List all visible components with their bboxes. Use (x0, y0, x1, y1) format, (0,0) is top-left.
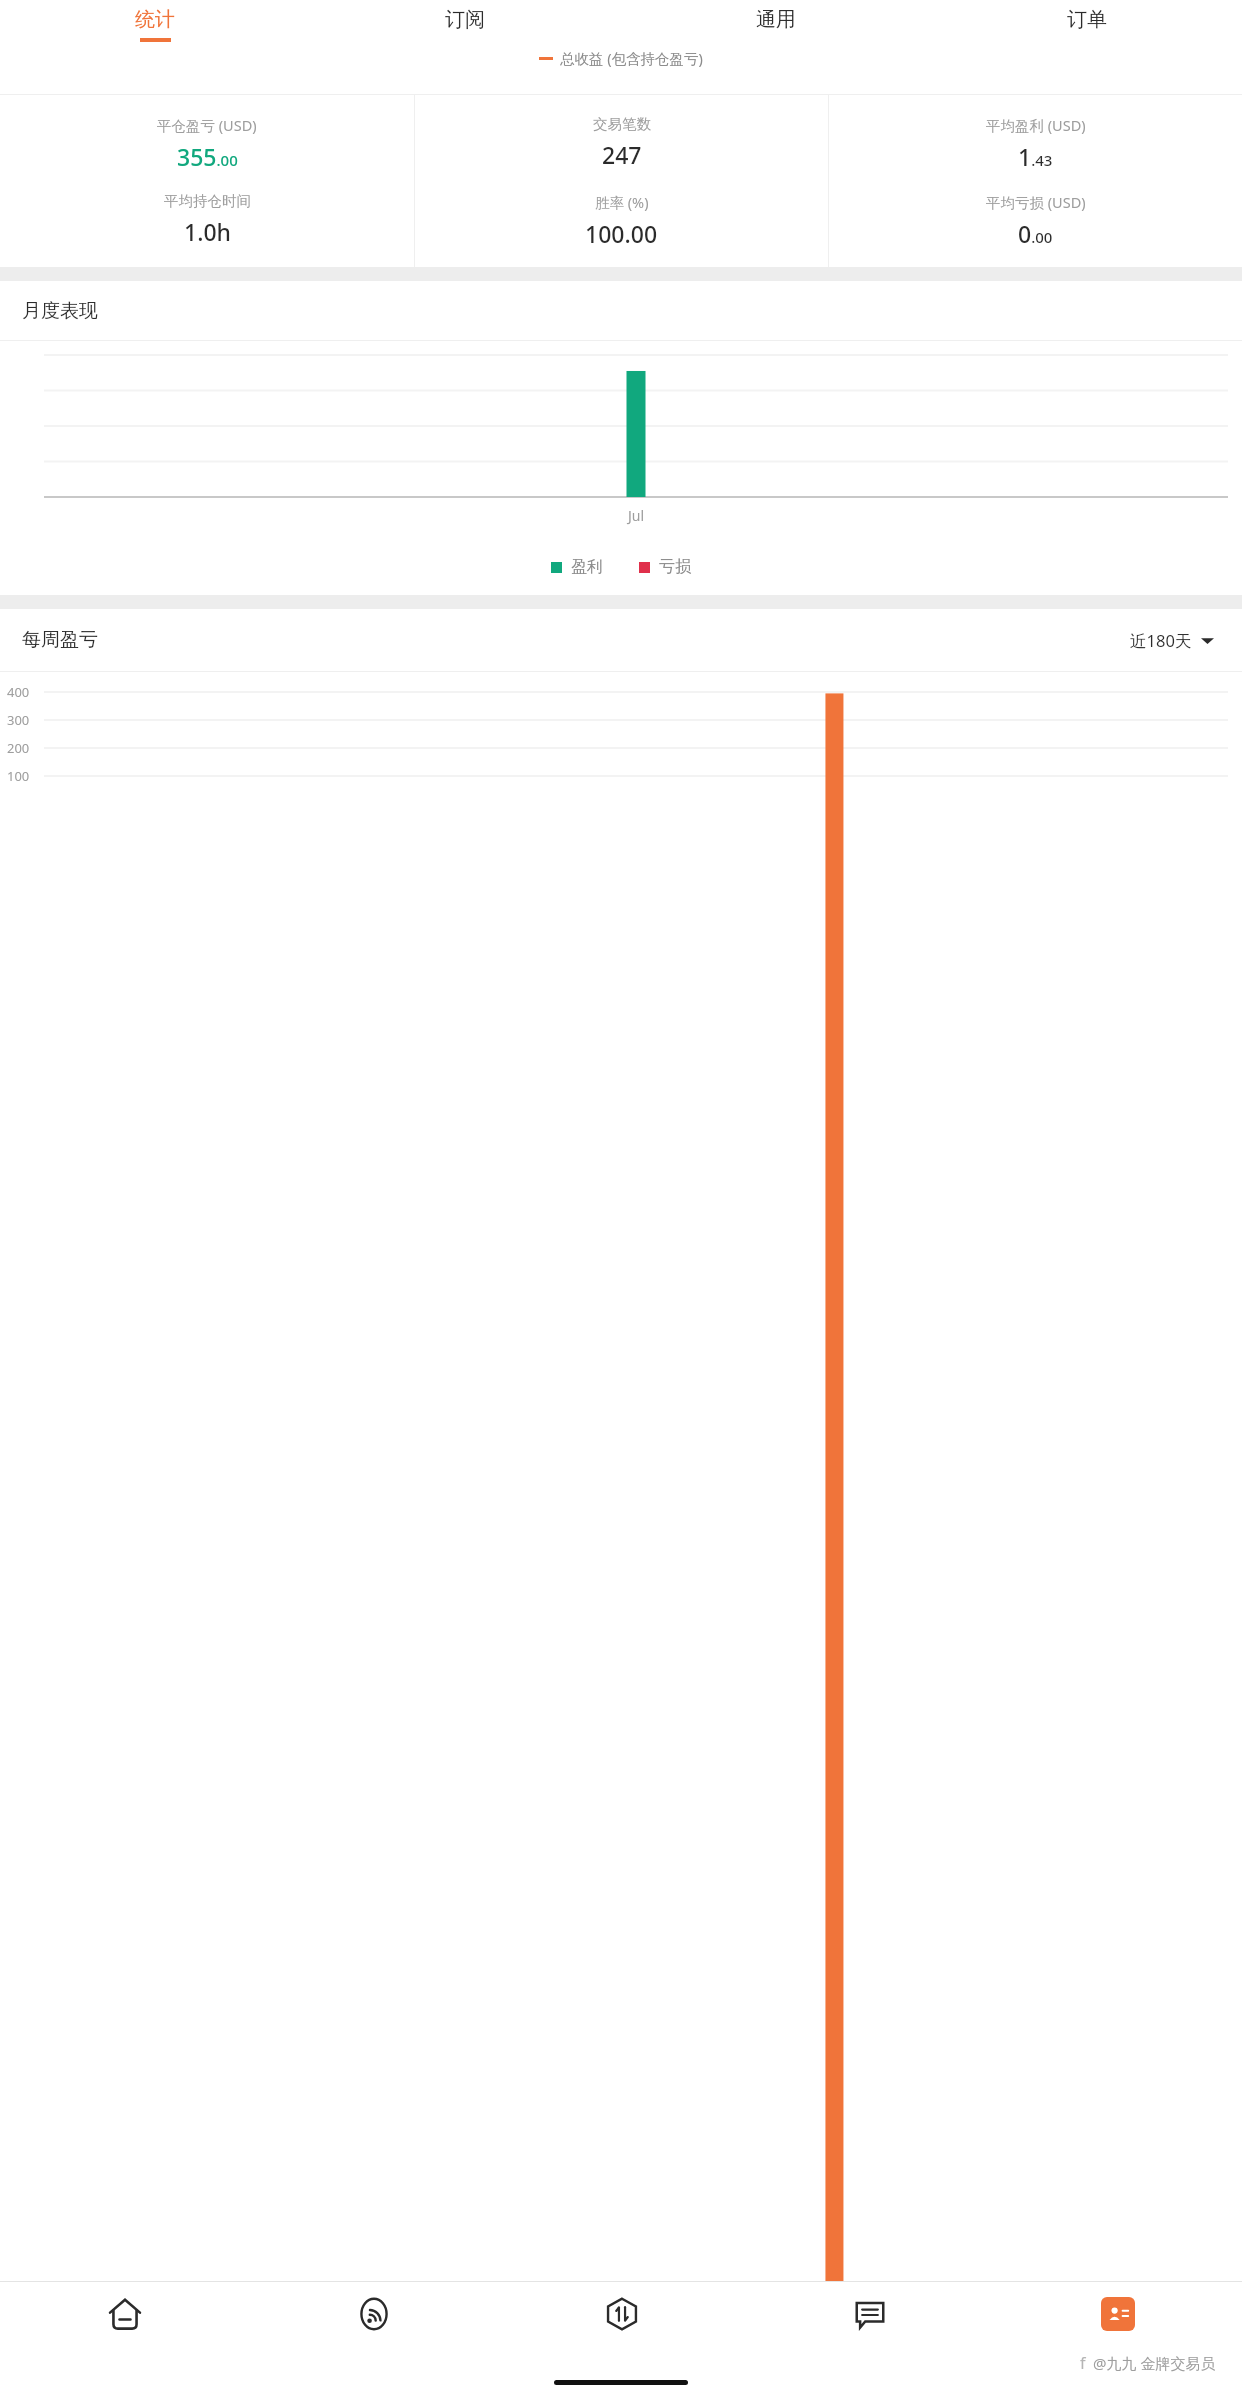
button[interactable]: Trade (498, 2282, 746, 2346)
staticText: 交易笔数 (593, 115, 651, 133)
staticText: 0.00 (1018, 218, 1053, 249)
staticText: 近180天 (1130, 629, 1192, 652)
staticText: @九九 金牌交易员 (1093, 2353, 1216, 2373)
staticText: 通用 (756, 7, 796, 32)
staticText: 月度表现 (22, 299, 98, 323)
button[interactable]: 统计 (0, 0, 310, 48)
staticText: 1.0h (184, 216, 231, 247)
staticText: 总收益 (包含持仓盈亏) (560, 48, 703, 68)
staticText: 亏损 (659, 557, 691, 577)
staticText: 100 (7, 767, 30, 785)
button[interactable]: Feed (249, 2282, 498, 2346)
button[interactable]: 通用 (620, 0, 931, 48)
staticText: 统计 (135, 7, 175, 32)
staticText: 盈利 (571, 557, 603, 577)
staticText: 200 (7, 739, 30, 757)
staticText: 400 (7, 683, 30, 701)
staticText: 胜率 (%) (595, 192, 649, 212)
button[interactable]: 订单 (931, 0, 1242, 48)
staticText: Jul (628, 506, 645, 525)
staticText: 平均亏损 (USD) (986, 192, 1086, 212)
staticText: 247 (602, 139, 642, 170)
staticText: 1.43 (1018, 141, 1053, 172)
button[interactable]: Home (0, 2282, 249, 2346)
staticText: 平仓盈亏 (USD) (157, 115, 257, 135)
staticText: 订单 (1067, 7, 1107, 32)
button[interactable]: Profile (994, 2282, 1242, 2346)
staticText: 平均盈利 (USD) (986, 115, 1086, 135)
staticText: 订阅 (445, 7, 485, 32)
button[interactable]: 订阅 (310, 0, 620, 48)
staticText: 平均持仓时间 (164, 192, 251, 210)
staticText: f (1080, 2352, 1086, 2374)
staticText: 每周盈亏 (22, 628, 98, 652)
staticText: 355.00 (177, 141, 238, 172)
staticText: 300 (7, 711, 30, 729)
button[interactable]: Messages (746, 2282, 994, 2346)
staticText: 100.00 (585, 218, 658, 249)
button[interactable]: 近180天 (1124, 623, 1220, 658)
